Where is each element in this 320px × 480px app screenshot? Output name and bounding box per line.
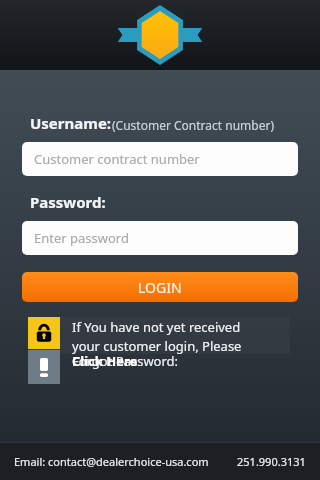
staticText: If You have not yet received (72, 318, 241, 336)
staticText: Password: (30, 192, 106, 212)
button[interactable]: Forgot Password: (72, 352, 252, 372)
button[interactable]: 251.990.3131 (237, 454, 306, 469)
button[interactable]: Email: contact@dealerchoice-usa.com (14, 454, 209, 469)
other: Secure login (28, 317, 60, 349)
button[interactable]: Customer contract number (22, 142, 298, 176)
other: Forgot password (28, 350, 60, 384)
staticText: LOGIN (138, 278, 182, 297)
staticText: 251.990.3131 (237, 454, 306, 469)
button[interactable]: Enter password (22, 221, 298, 255)
staticText: your customer login, Please (72, 337, 242, 355)
staticText: (Customer Contract number) (112, 117, 275, 133)
staticText: Enter password (34, 229, 129, 247)
button[interactable]: LOGIN (22, 272, 298, 302)
staticText: Customer contract number (34, 150, 200, 168)
staticText: Username: (30, 113, 112, 133)
staticText: Email: contact@dealerchoice-usa.com (14, 454, 209, 469)
staticText: Forgot Password: (72, 352, 179, 370)
staticText: Click Here (72, 352, 138, 370)
